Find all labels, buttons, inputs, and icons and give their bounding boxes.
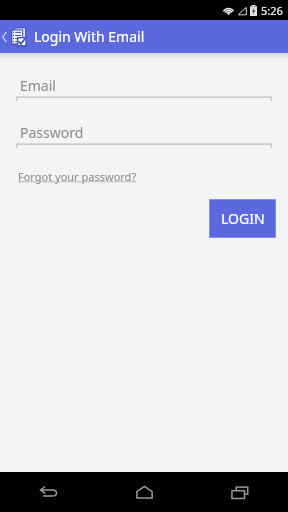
button[interactable]: Home <box>96 472 192 512</box>
staticText: Login With Email <box>34 27 145 46</box>
button[interactable]: Recent apps <box>192 472 288 512</box>
button[interactable]: Back <box>0 472 96 512</box>
button[interactable]: Navigate up <box>0 20 288 53</box>
staticText: Forgot your password? <box>18 169 137 184</box>
staticText: LOGIN <box>221 209 265 228</box>
button[interactable]: Email <box>16 74 272 101</box>
staticText: Password <box>20 123 84 142</box>
staticText: 5:26 <box>261 3 283 18</box>
button[interactable]: LOGIN <box>210 200 275 237</box>
button[interactable]: Password <box>16 121 272 148</box>
staticText: Email <box>20 76 56 95</box>
button[interactable]: Forgot your password? <box>18 167 137 186</box>
